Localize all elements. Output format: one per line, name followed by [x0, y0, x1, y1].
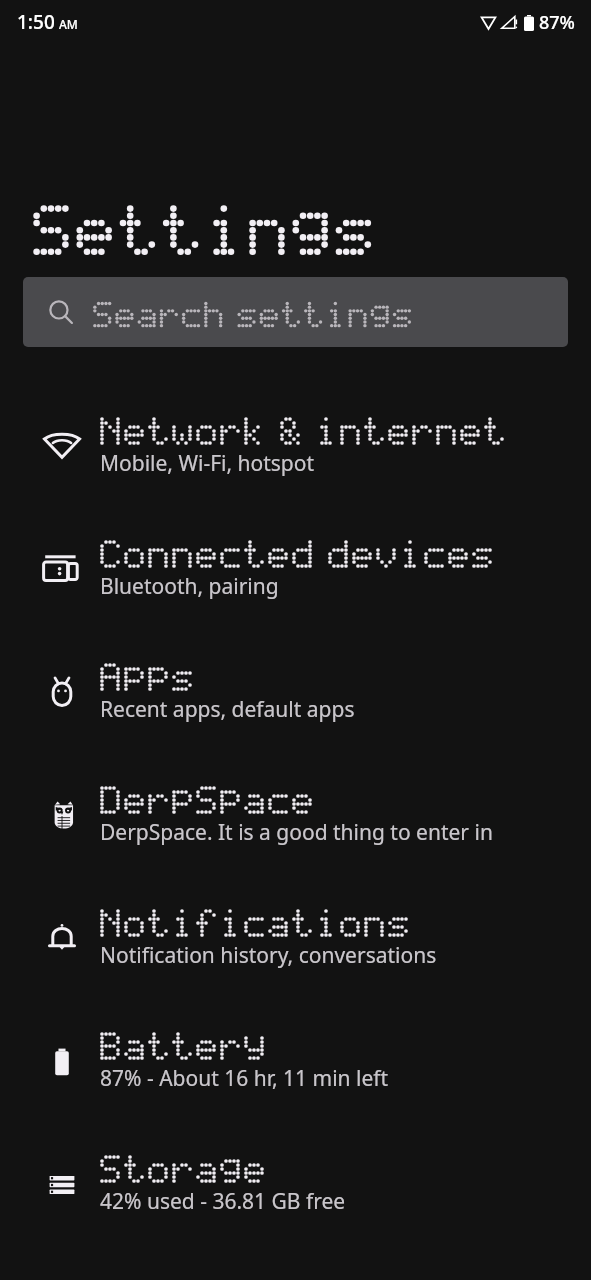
staticText: 42% used - 36.81 GB free	[100, 1187, 346, 1216]
staticText: Notification history, conversations	[100, 941, 437, 970]
staticText: Mobile, Wi-Fi, hotspot	[100, 449, 315, 478]
button[interactable]: Notification history, conversations	[0, 877, 591, 1000]
button[interactable]: Mobile, Wi-Fi, hotspot	[0, 385, 591, 508]
button[interactable]: 42% used - 36.81 GB free	[0, 1123, 591, 1246]
staticText: DerpSpace. It is a good thing to enter i…	[100, 818, 493, 847]
staticText: Bluetooth, pairing	[100, 572, 279, 601]
button[interactable]: Recent apps, default apps	[0, 631, 591, 754]
staticText: 87%	[539, 10, 575, 35]
button[interactable]	[23, 277, 568, 347]
staticText: 87% - About 16 hr, 11 min left	[100, 1064, 389, 1093]
staticText: Recent apps, default apps	[100, 695, 355, 724]
button[interactable]: DerpSpace. It is a good thing to enter i…	[0, 754, 591, 877]
staticText: 1:50	[17, 9, 55, 35]
staticText: AM	[59, 16, 78, 32]
button[interactable]: 87% - About 16 hr, 11 min left	[0, 1000, 591, 1123]
button[interactable]: Bluetooth, pairing	[0, 508, 591, 631]
